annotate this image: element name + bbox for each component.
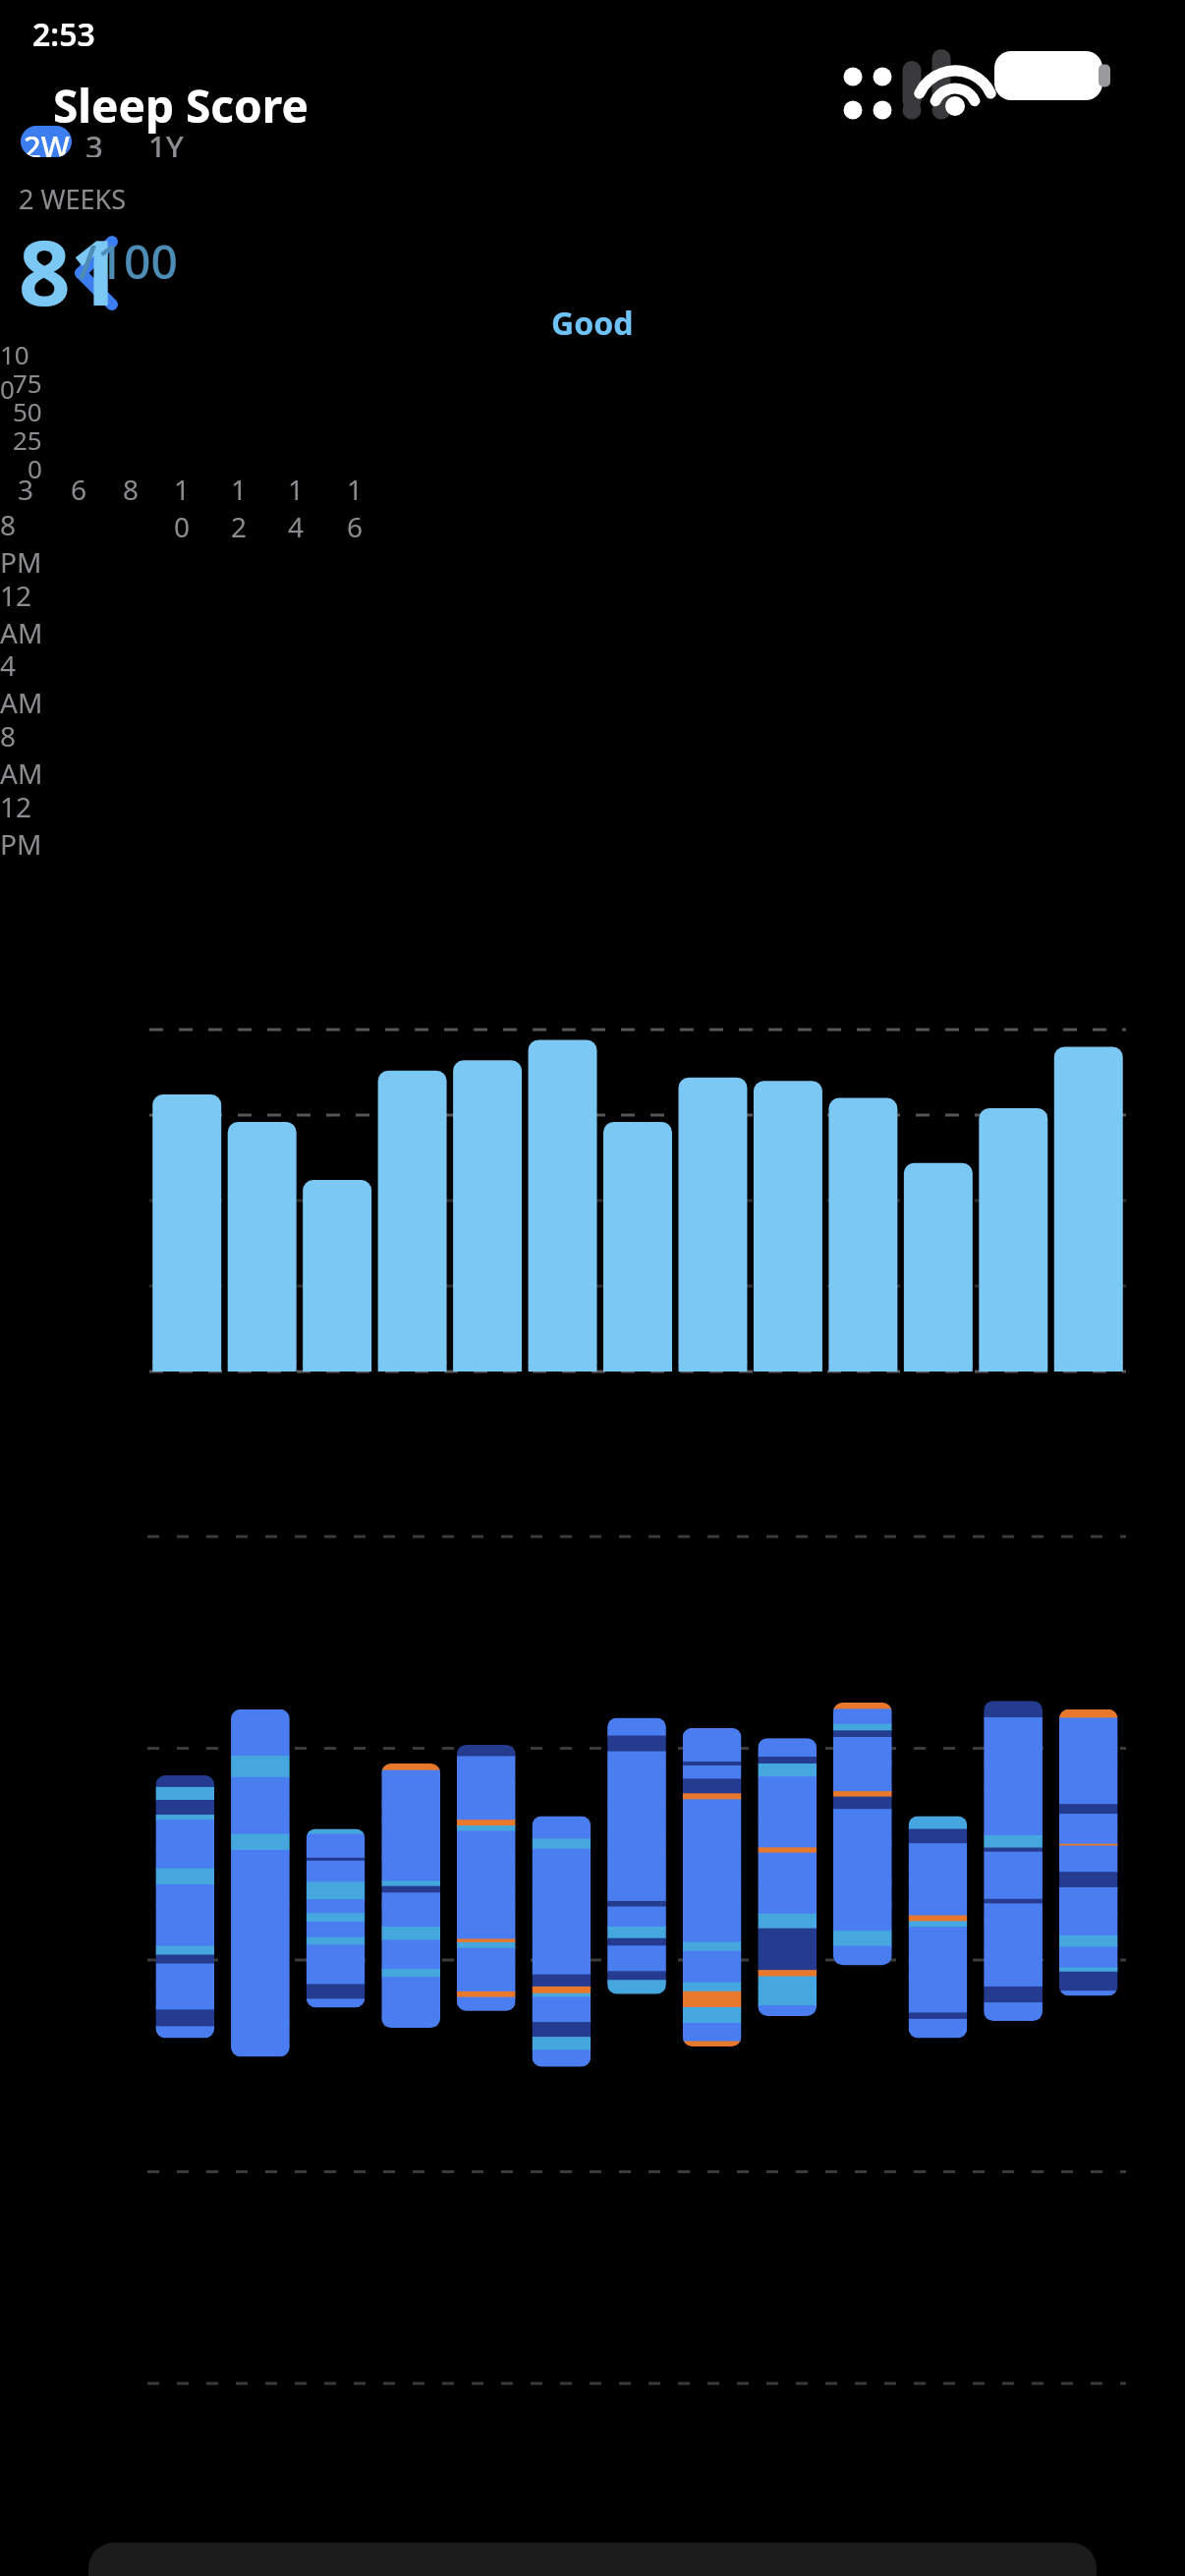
button[interactable]: 2W	[21, 126, 72, 157]
staticText: 75	[13, 365, 42, 400]
staticText: 2W	[24, 126, 70, 157]
staticText: 0	[28, 451, 42, 485]
staticText: 2 WEEKS	[19, 181, 127, 217]
staticText: 8 PM	[0, 506, 45, 581]
staticText: 2:53	[32, 13, 95, 56]
staticText: 3	[18, 471, 34, 508]
staticText: 8	[123, 471, 140, 508]
staticText: 12 PM	[0, 788, 45, 863]
staticText: 81	[19, 209, 123, 332]
staticText: 50	[13, 394, 42, 428]
staticText: 12	[231, 471, 257, 545]
staticText: 1Y	[148, 126, 184, 157]
staticText: Sleep Score	[53, 75, 309, 137]
staticText: /100	[79, 229, 178, 293]
staticText: 10	[174, 471, 200, 545]
button[interactable]: 3M	[85, 126, 128, 157]
staticText: 14	[288, 471, 314, 545]
staticText: 4 AM	[0, 646, 45, 721]
staticText: 100	[0, 337, 42, 406]
staticText: 6	[71, 471, 87, 508]
button[interactable]: 1Y	[146, 126, 186, 157]
staticText: 16	[347, 471, 373, 545]
staticText: 3M	[85, 126, 128, 157]
staticText: 12 AM	[0, 577, 45, 651]
staticText: 25	[13, 422, 42, 457]
staticText: Good	[551, 302, 634, 345]
staticText: 8 AM	[0, 717, 45, 792]
